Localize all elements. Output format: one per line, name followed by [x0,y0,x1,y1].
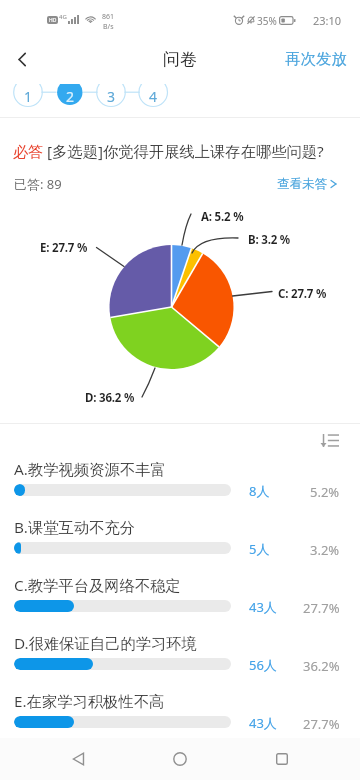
button[interactable]: Back [0,40,44,78]
button[interactable]: Recents [259,738,305,780]
staticText: C.教学平台及网络不稳定 [14,575,181,596]
staticText: C: 27.7 % [278,286,327,302]
staticText: 43人 [249,714,277,732]
button[interactable]: Sort [316,426,344,454]
staticText: 3 [107,87,116,106]
staticText: 36.2% [303,657,340,675]
staticText: B/s [103,22,114,32]
staticText: D: 36.2 % [85,390,135,406]
button[interactable]: Home [157,738,203,780]
button[interactable]: 1 [17,84,39,109]
button[interactable]: E.在家学习积极性不高 [0,684,360,740]
button[interactable]: D.很难保证自己的学习环境 [0,626,360,682]
button[interactable]: 2 [59,84,81,109]
staticText: [多选题]你觉得开展线上课存在哪些问题? [47,141,324,162]
staticText: 35% [257,14,277,28]
staticText: 问卷 [163,49,197,70]
button[interactable]: Back [56,738,102,780]
staticText: 27.7% [303,599,340,617]
staticText: 23:10 [313,13,342,28]
staticText: 8人 [249,482,270,500]
staticText: 56人 [249,656,277,674]
staticText: 已答: 89 [14,175,62,193]
staticText: B.课堂互动不充分 [14,517,135,538]
staticText: 861 [102,12,115,22]
staticText: 3.2% [310,541,340,559]
staticText: HD [49,17,57,24]
button[interactable]: A.教学视频资源不丰富 [0,452,360,508]
staticText: 5人 [249,540,270,558]
staticText: D.很难保证自己的学习环境 [14,633,197,654]
staticText: 2 [66,87,75,106]
staticText: E.在家学习积极性不高 [14,691,165,712]
staticText: A: 5.2 % [201,209,244,225]
staticText: 5.2% [310,483,340,501]
staticText: 查看未答 [277,176,327,192]
staticText: B: 3.2 % [248,232,291,248]
button[interactable]: 4 [142,84,164,109]
button[interactable]: C.教学平台及网络不稳定 [0,568,360,624]
staticText: 27.7% [303,715,340,733]
staticText: 1 [24,87,33,106]
staticText: A.教学视频资源不丰富 [14,459,166,480]
button[interactable]: 再次发放 [273,40,360,78]
button[interactable]: B.课堂互动不充分 [0,510,360,566]
staticText: 43人 [249,598,277,616]
staticText: E: 27.7 % [40,240,88,256]
button[interactable]: 3 [100,84,122,109]
staticText: 再次发放 [285,49,347,69]
staticText: 必答 [13,142,44,161]
staticText: 4G [59,13,67,21]
button[interactable]: 查看未答 [265,176,360,192]
staticText: 4 [149,87,158,106]
